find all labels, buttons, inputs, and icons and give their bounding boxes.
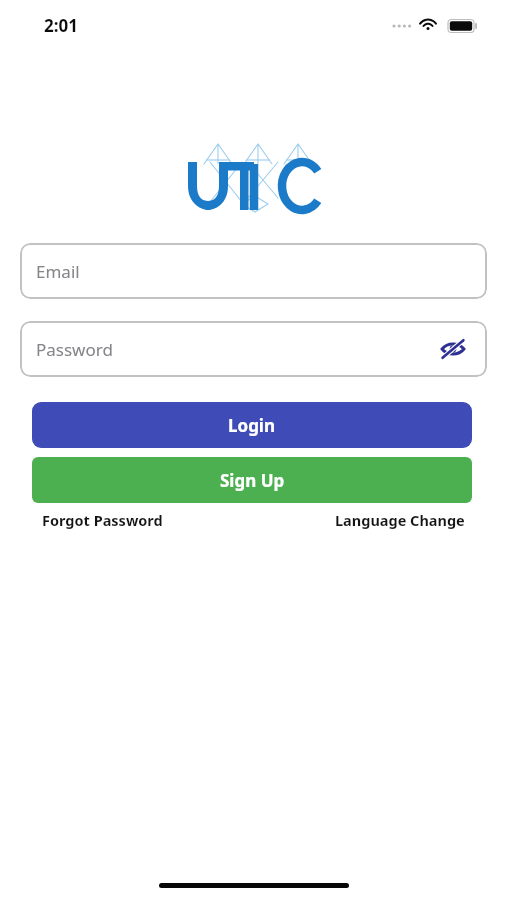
- staticText: 2:01: [44, 14, 78, 37]
- button[interactable]: Show password: [437, 333, 469, 365]
- button[interactable]: Language Change: [335, 510, 465, 530]
- staticText: Sign Up: [220, 469, 285, 492]
- staticText: Password: [36, 338, 113, 361]
- staticText: Login: [228, 414, 276, 437]
- button[interactable]: Email: [20, 243, 487, 299]
- button[interactable]: Password: [20, 321, 487, 377]
- staticText: Forgot Password: [42, 510, 163, 530]
- button[interactable]: Forgot Password: [42, 510, 163, 530]
- staticText: Language Change: [335, 510, 465, 530]
- button[interactable]: Login: [32, 402, 472, 448]
- staticText: Email: [36, 260, 80, 283]
- button[interactable]: Sign Up: [32, 457, 472, 503]
